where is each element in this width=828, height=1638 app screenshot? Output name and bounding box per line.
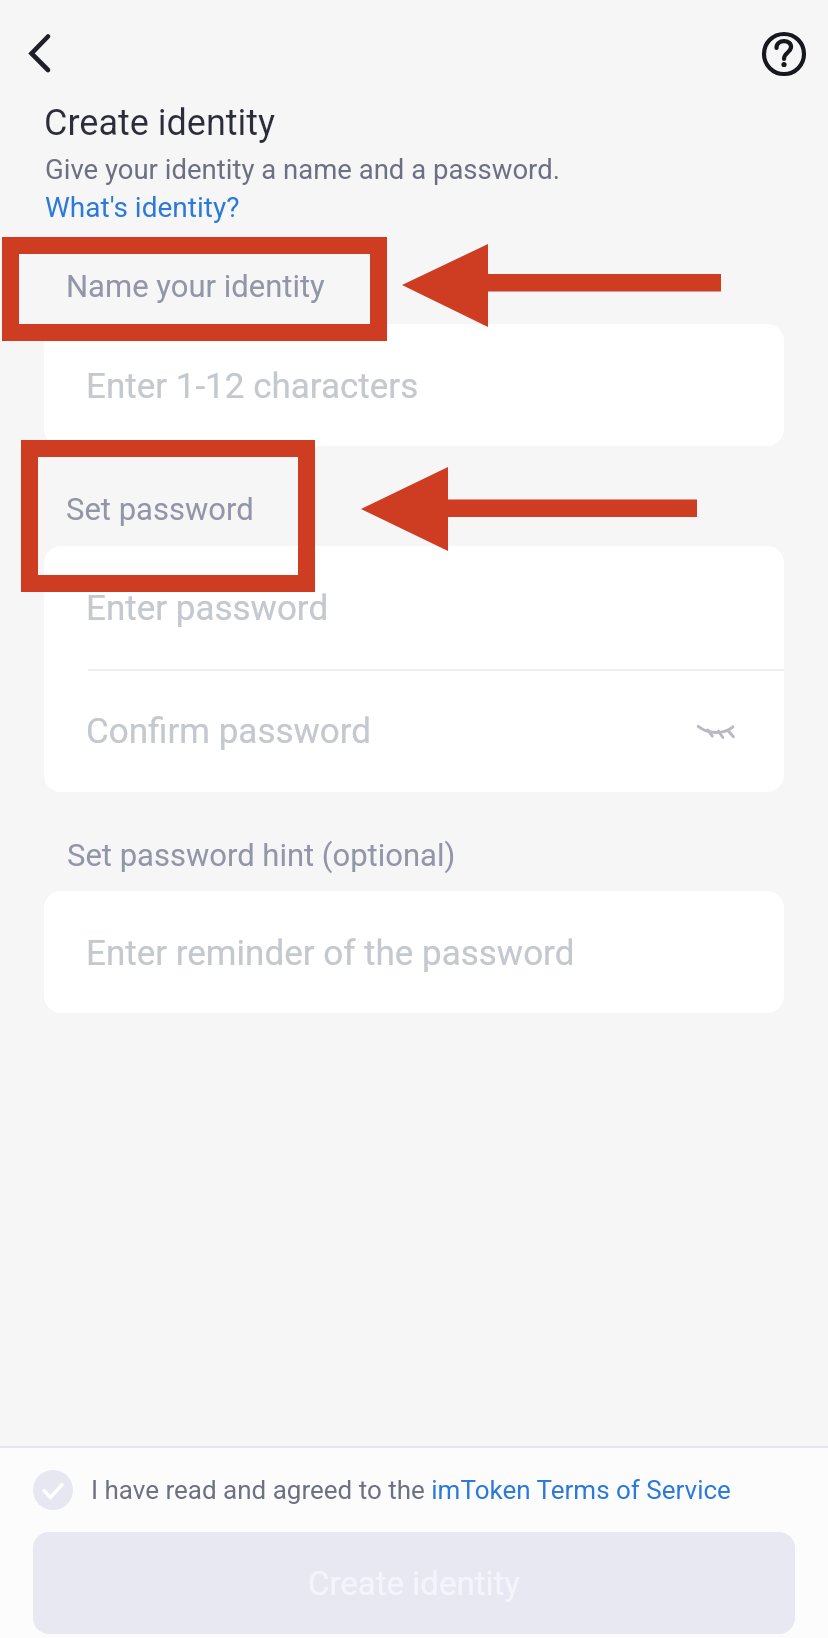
button[interactable]: Help [744, 14, 824, 94]
staticText: Enter reminder of the password [86, 933, 575, 974]
staticText: Create identity [44, 102, 276, 144]
staticText: I have read and agreed to the imToken Te… [91, 1475, 731, 1505]
staticText: Enter 1-12 characters [86, 366, 419, 407]
button[interactable]: Back [4, 14, 84, 94]
staticText: Set password hint (optional) [67, 837, 456, 873]
button[interactable]: Show password [678, 693, 754, 769]
staticText: Set password [66, 491, 254, 527]
button[interactable]: Enter password [44, 546, 784, 669]
button[interactable]: Enter reminder of the password [44, 891, 784, 1013]
staticText: Name your identity [66, 268, 325, 304]
staticText: Enter password [86, 588, 329, 629]
button[interactable]: Confirm password [44, 669, 784, 792]
button[interactable]: Enter 1-12 characters [44, 324, 784, 446]
button[interactable]: What's identity? [45, 191, 240, 224]
staticText: Confirm password [86, 711, 372, 752]
button[interactable]: I have read and agreed to the imToken Te… [33, 1466, 731, 1514]
staticText: Create identity [308, 1564, 520, 1603]
staticText: Give your identity a name and a password… [45, 153, 560, 185]
